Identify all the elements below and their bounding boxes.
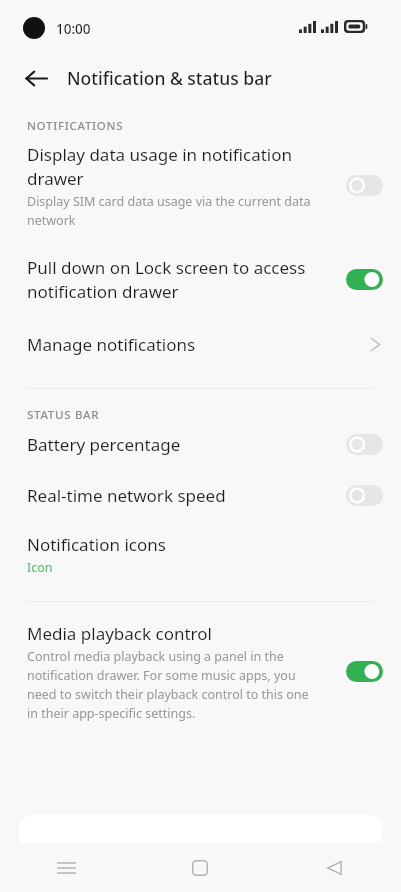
staticText: Manage notifications — [27, 333, 370, 356]
button[interactable]: Toggle on — [346, 269, 383, 290]
button[interactable]: Media playback control — [0, 616, 401, 731]
staticText: Control media playback using a panel in … — [27, 648, 312, 721]
button[interactable]: Toggle off — [346, 434, 383, 455]
staticText: STATUS BAR — [27, 407, 100, 423]
button[interactable]: Real-time network speed — [0, 474, 401, 525]
button[interactable]: Back — [267, 843, 401, 892]
staticText: Media playback control — [27, 622, 212, 645]
button[interactable]: Battery percentage — [0, 423, 401, 474]
button[interactable]: Toggle off — [346, 175, 383, 196]
staticText: Display SIM card data usage via the curr… — [27, 193, 312, 228]
button[interactable]: Display data usage in notification drawe… — [0, 134, 401, 242]
staticText: Pull down on Lock screen to access notif… — [27, 256, 312, 303]
button[interactable]: Toggle on — [346, 661, 383, 682]
staticText: Icon — [27, 559, 53, 576]
staticText: Notification icons — [27, 533, 166, 556]
button[interactable]: Manage notifications — [0, 319, 401, 370]
staticText: 10:00 — [56, 20, 91, 38]
staticText: Display data usage in notification drawe… — [27, 143, 312, 190]
button[interactable]: Pull down on Lock screen to access notif… — [0, 242, 401, 319]
button[interactable]: Home — [133, 843, 267, 892]
staticText: Battery percentage — [27, 433, 181, 456]
staticText: NOTIFICATIONS — [27, 118, 124, 134]
button[interactable]: Notification icons — [0, 525, 401, 584]
staticText: Real-time network speed — [27, 484, 226, 507]
button[interactable]: Toggle off — [346, 485, 383, 506]
staticText: Notification & status bar — [67, 66, 272, 90]
button[interactable]: Back — [16, 58, 56, 98]
button[interactable]: Recent apps — [0, 843, 133, 892]
